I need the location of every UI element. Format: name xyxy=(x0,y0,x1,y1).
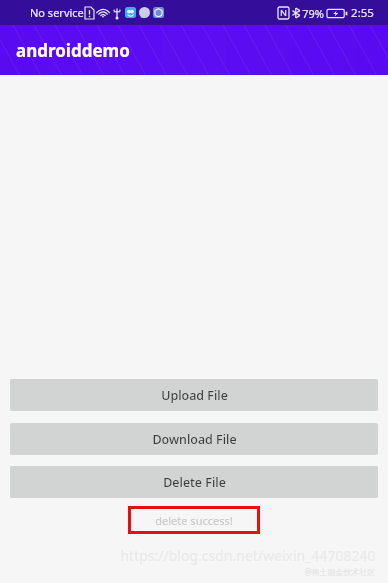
button[interactable]: Download File xyxy=(10,423,378,455)
staticText: Upload File xyxy=(161,387,228,404)
staticText: No service xyxy=(30,5,84,20)
staticText: delete success! xyxy=(155,513,233,528)
button[interactable]: Upload File xyxy=(10,379,378,411)
staticText: Download File xyxy=(152,431,237,448)
button[interactable]: Delete File xyxy=(10,466,378,498)
staticText: https://blog.csdn.net/weixin_44708240 xyxy=(120,546,376,565)
staticText: 2:55 xyxy=(351,5,374,21)
staticText: androiddemo xyxy=(16,39,130,62)
staticText: @稀土掘金技术社区 xyxy=(304,566,376,577)
staticText: 79% xyxy=(302,6,324,21)
staticText: Delete File xyxy=(163,474,226,491)
